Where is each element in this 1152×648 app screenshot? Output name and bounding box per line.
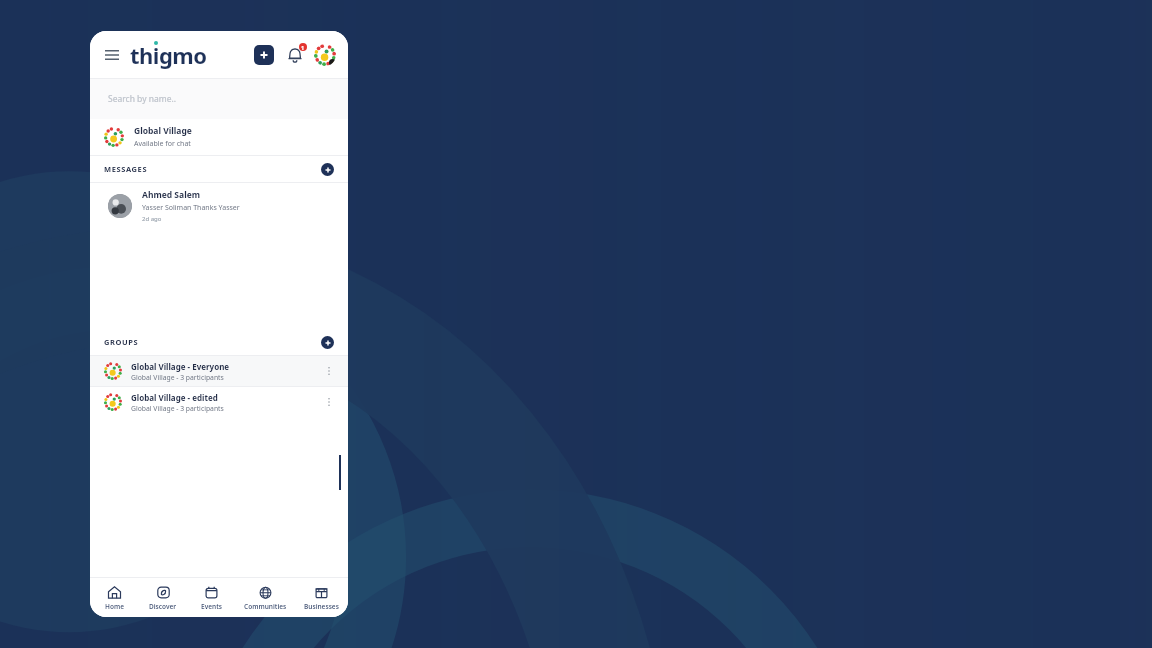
staticText: Global Village - 3 participants	[131, 404, 224, 413]
button[interactable]: Menu	[102, 45, 122, 65]
button[interactable]: Discover	[139, 579, 187, 617]
button[interactable]: Search by name..	[90, 79, 348, 119]
staticText: 1	[301, 44, 305, 51]
button[interactable]: Add MESSAGES	[321, 163, 334, 176]
staticText: GROUPS	[104, 337, 139, 347]
staticText: 2d ago	[142, 215, 162, 223]
staticText: Events	[201, 602, 222, 611]
button[interactable]: Ahmed Salem	[90, 183, 348, 229]
button[interactable]: Businesses	[295, 579, 348, 617]
button[interactable]: Global Village - edited	[90, 387, 348, 417]
button[interactable]: Home	[90, 579, 139, 617]
staticText: thigmo	[130, 40, 207, 70]
button[interactable]: Global Village	[90, 119, 348, 155]
staticText: Businesses	[304, 602, 339, 611]
staticText: Global Village	[134, 125, 192, 137]
staticText: Available for chat	[134, 139, 191, 149]
button[interactable]: Notifications	[284, 44, 306, 66]
button[interactable]: More options	[322, 395, 336, 409]
button[interactable]: Profile	[314, 44, 336, 66]
button[interactable]: Global Village - Everyone	[90, 356, 348, 386]
staticText: Global Village - edited	[131, 392, 218, 403]
staticText: Yasser Soliman Thanks Yasser	[142, 203, 240, 213]
button[interactable]: More options	[322, 364, 336, 378]
staticText: Search by name..	[108, 93, 177, 105]
button[interactable]: Communities	[235, 579, 295, 617]
button[interactable]: Add	[254, 45, 274, 65]
button[interactable]: Events	[187, 579, 235, 617]
staticText: Global Village - 3 participants	[131, 373, 224, 382]
staticText: Communities	[244, 602, 287, 611]
button[interactable]: Add GROUPS	[321, 336, 334, 349]
staticText: Home	[105, 602, 124, 611]
staticText: Discover	[149, 602, 177, 611]
staticText: Ahmed Salem	[142, 189, 201, 201]
staticText: Global Village - Everyone	[131, 361, 230, 372]
staticText: MESSAGES	[104, 164, 148, 174]
